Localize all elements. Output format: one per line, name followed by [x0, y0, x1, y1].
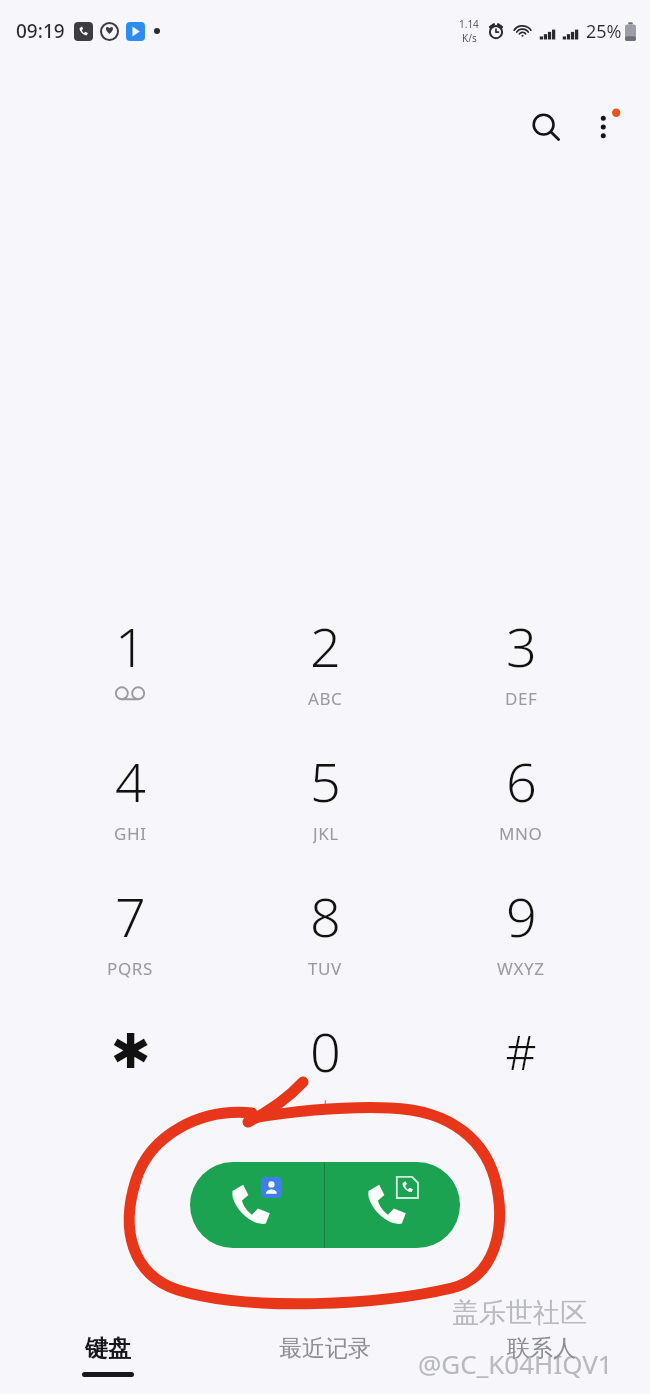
staticText: + [320, 1092, 332, 1114]
button[interactable]: 3 [437, 596, 605, 722]
staticText: 键盘 [85, 1334, 131, 1363]
staticText: 1 [115, 609, 146, 683]
button[interactable]: 键盘 [0, 1318, 216, 1394]
staticText: 最近记录 [279, 1334, 371, 1363]
staticText: 盖乐世社区 [452, 1296, 587, 1330]
button[interactable]: 1 [46, 596, 214, 722]
staticText: ✱ [110, 1023, 151, 1079]
button[interactable]: More options [578, 99, 634, 155]
button[interactable]: 2 [241, 596, 409, 722]
staticText: 0 [310, 1014, 341, 1088]
button[interactable]: # [437, 1001, 605, 1127]
button[interactable]: 9 [437, 866, 605, 992]
button[interactable]: Call with SIM 1 [190, 1162, 324, 1248]
staticText: 09:19 [16, 18, 65, 44]
staticText: 25% [586, 19, 622, 44]
staticText: 9 [506, 879, 537, 953]
button[interactable]: ✱ [46, 1001, 214, 1127]
button[interactable]: 最近记录 [216, 1318, 433, 1394]
button[interactable]: 4 [46, 731, 214, 857]
staticText: 6 [506, 744, 537, 818]
staticText: @GC_K04HIQV1 [418, 1346, 613, 1381]
staticText: MNO [499, 822, 543, 844]
button[interactable]: 7 [46, 866, 214, 992]
button[interactable]: 0 [241, 1001, 409, 1127]
staticText: 8 [310, 879, 341, 953]
staticText: PQRS [107, 957, 153, 979]
button[interactable]: 6 [437, 731, 605, 857]
staticText: 1.14 [459, 17, 479, 31]
staticText: 联系人 [507, 1334, 576, 1363]
staticText: 7 [115, 879, 146, 953]
staticText: TUV [308, 957, 342, 979]
staticText: # [505, 1019, 537, 1084]
staticText: K/s [462, 31, 477, 45]
staticText: 5 [310, 744, 341, 818]
button[interactable]: 5 [241, 731, 409, 857]
button[interactable]: 联系人 [433, 1318, 650, 1394]
staticText: GHI [114, 822, 147, 844]
staticText: DEF [505, 687, 538, 709]
button[interactable]: Search [518, 99, 574, 155]
button[interactable]: 8 [241, 866, 409, 992]
staticText: WXYZ [497, 957, 545, 979]
staticText: 4 [115, 744, 146, 818]
button[interactable]: Call with SIM 2 [325, 1162, 460, 1248]
staticText: 2 [310, 609, 341, 683]
staticText: JKL [313, 822, 339, 844]
staticText: 3 [506, 609, 537, 683]
staticText: ABC [308, 687, 343, 709]
